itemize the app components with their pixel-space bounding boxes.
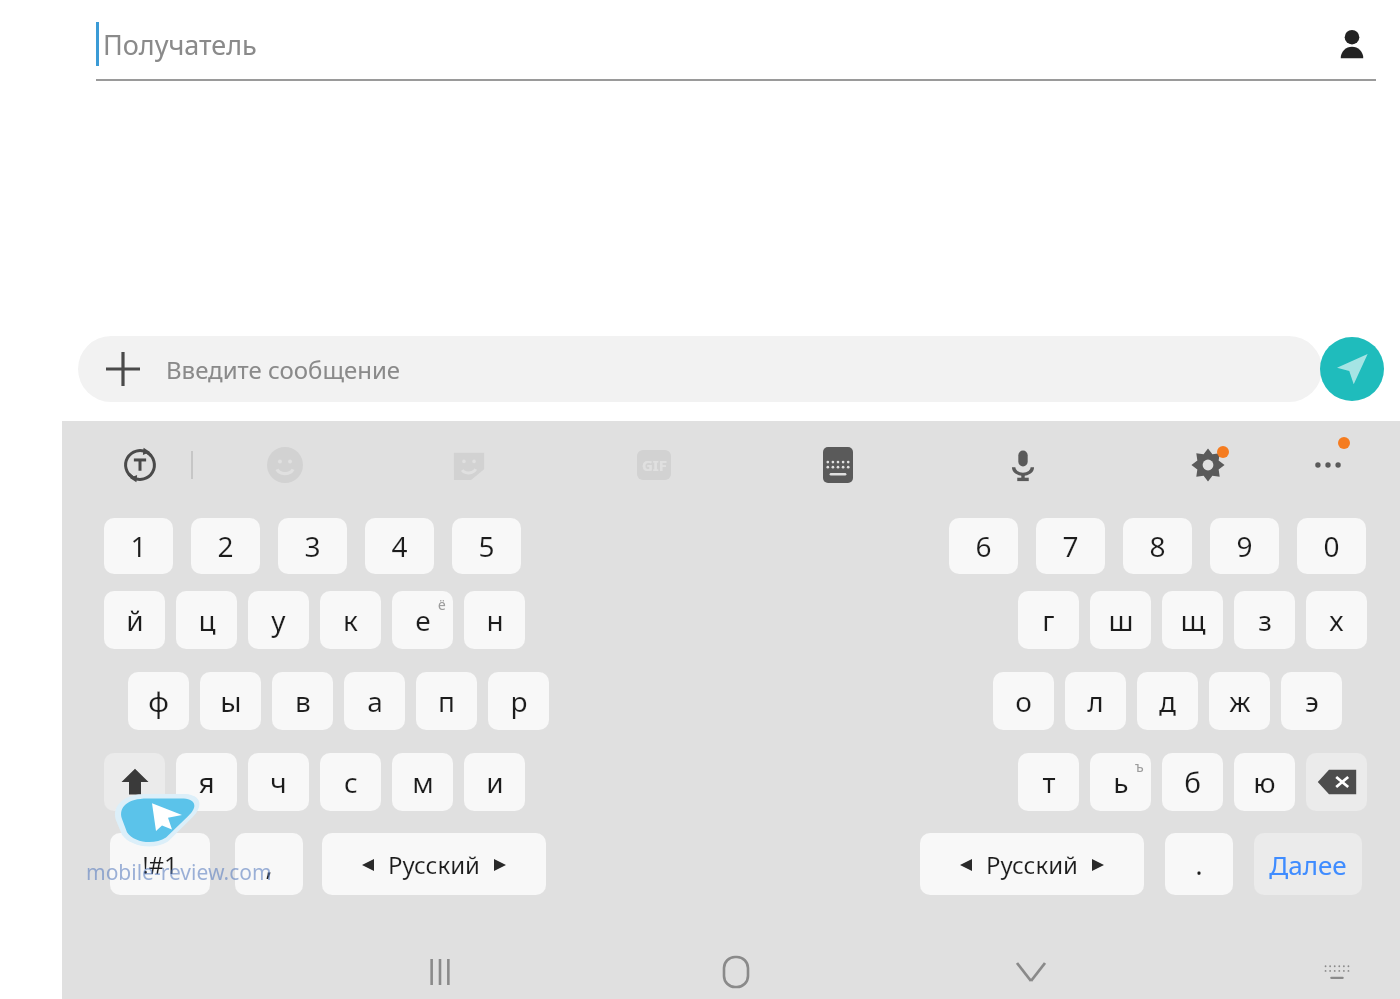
button[interactable]: Home xyxy=(706,942,766,999)
button[interactable]: , xyxy=(235,833,303,895)
button[interactable]: Translate xyxy=(114,439,166,491)
button[interactable]: Backspace xyxy=(1306,753,1367,811)
button[interactable]: Shift xyxy=(104,753,165,811)
button[interactable]: More options xyxy=(1302,439,1354,491)
button[interactable]: Русский xyxy=(322,833,546,895)
button[interactable]: 3 xyxy=(278,518,347,574)
staticText: ь xyxy=(1113,763,1129,801)
staticText: ю xyxy=(1253,763,1276,801)
button[interactable]: щ xyxy=(1162,591,1223,649)
button[interactable]: и xyxy=(464,753,525,811)
button[interactable]: а xyxy=(344,672,405,730)
button[interactable]: Recents xyxy=(410,942,470,999)
staticText: х xyxy=(1329,601,1344,639)
button[interactable]: ц xyxy=(176,591,237,649)
button[interactable]: 6 xyxy=(949,518,1018,574)
button[interactable]: 5 xyxy=(452,518,521,574)
button[interactable]: в xyxy=(272,672,333,730)
button[interactable]: . xyxy=(1165,833,1233,895)
button[interactable]: 1 xyxy=(104,518,173,574)
staticText: !#1 xyxy=(142,848,178,881)
staticText: п xyxy=(438,682,455,720)
staticText: , xyxy=(265,845,273,883)
button[interactable]: н xyxy=(464,591,525,649)
staticText: 6 xyxy=(975,527,992,565)
staticText: 5 xyxy=(478,527,495,565)
button[interactable]: е xyxy=(392,591,453,649)
button[interactable]: ь xyxy=(1090,753,1151,811)
button[interactable]: Получатель xyxy=(96,8,1304,78)
button[interactable]: ю xyxy=(1234,753,1295,811)
button[interactable]: Hide keyboard xyxy=(1001,942,1061,999)
staticText: ф xyxy=(148,682,169,720)
staticText: г xyxy=(1042,601,1055,639)
staticText: mobile-review.com xyxy=(86,858,272,887)
button[interactable]: к xyxy=(320,591,381,649)
staticText: л xyxy=(1087,682,1104,720)
button[interactable]: Введите сообщение xyxy=(78,336,1322,402)
staticText: у xyxy=(271,601,286,639)
button[interactable]: ч xyxy=(248,753,309,811)
staticText: ш xyxy=(1108,601,1134,639)
staticText: GIF xyxy=(642,455,667,475)
staticText: 3 xyxy=(304,527,321,565)
button[interactable]: т xyxy=(1018,753,1079,811)
staticText: б xyxy=(1184,763,1201,801)
staticText: н xyxy=(486,601,504,639)
button[interactable]: п xyxy=(416,672,477,730)
button[interactable]: Emoji xyxy=(259,439,311,491)
button[interactable]: ф xyxy=(128,672,189,730)
button[interactable]: з xyxy=(1234,591,1295,649)
staticText: щ xyxy=(1180,601,1206,639)
staticText: с xyxy=(344,763,358,801)
button[interactable]: Русский xyxy=(920,833,1144,895)
staticText: ж xyxy=(1229,682,1251,720)
button[interactable]: ш xyxy=(1090,591,1151,649)
button[interactable]: Stickers xyxy=(443,439,495,491)
button[interactable]: м xyxy=(392,753,453,811)
button[interactable]: 2 xyxy=(191,518,260,574)
button[interactable]: г xyxy=(1018,591,1079,649)
staticText: 7 xyxy=(1062,527,1079,565)
button[interactable]: 8 xyxy=(1123,518,1192,574)
staticText: э xyxy=(1305,682,1319,720)
staticText: д xyxy=(1159,682,1176,720)
button[interactable]: ж xyxy=(1209,672,1270,730)
staticText: ъ xyxy=(1135,757,1144,776)
button[interactable]: 7 xyxy=(1036,518,1105,574)
button[interactable]: р xyxy=(488,672,549,730)
button[interactable]: Voice input xyxy=(997,439,1049,491)
staticText: ц xyxy=(198,601,216,639)
button[interactable]: !#1 xyxy=(110,833,210,895)
staticText: и xyxy=(486,763,504,801)
staticText: Введите сообщение xyxy=(166,353,401,386)
button[interactable]: б xyxy=(1162,753,1223,811)
button[interactable]: Send xyxy=(1320,337,1384,401)
button[interactable]: о xyxy=(993,672,1054,730)
button[interactable]: х xyxy=(1306,591,1367,649)
button[interactable]: Keyboard mode xyxy=(812,439,864,491)
button[interactable]: л xyxy=(1065,672,1126,730)
button[interactable]: Settings xyxy=(1182,439,1234,491)
button[interactable]: 9 xyxy=(1210,518,1279,574)
staticText: . xyxy=(1195,845,1203,883)
staticText: Получатель xyxy=(103,26,257,63)
button[interactable]: 4 xyxy=(365,518,434,574)
button[interactable]: ы xyxy=(200,672,261,730)
button[interactable]: Contacts xyxy=(1324,16,1380,72)
button[interactable]: Далее xyxy=(1254,833,1362,895)
button[interactable]: с xyxy=(320,753,381,811)
button[interactable]: э xyxy=(1281,672,1342,730)
button[interactable]: у xyxy=(248,591,309,649)
button[interactable]: я xyxy=(176,753,237,811)
staticText: 1 xyxy=(130,527,147,565)
staticText: й xyxy=(126,601,144,639)
button[interactable]: Switch keyboard xyxy=(1307,942,1367,999)
button[interactable]: д xyxy=(1137,672,1198,730)
button[interactable]: GIF xyxy=(628,439,680,491)
button[interactable]: 0 xyxy=(1297,518,1366,574)
staticText: Русский xyxy=(388,848,480,881)
staticText: з xyxy=(1258,601,1272,639)
button[interactable]: й xyxy=(104,591,165,649)
staticText: ы xyxy=(220,682,242,720)
